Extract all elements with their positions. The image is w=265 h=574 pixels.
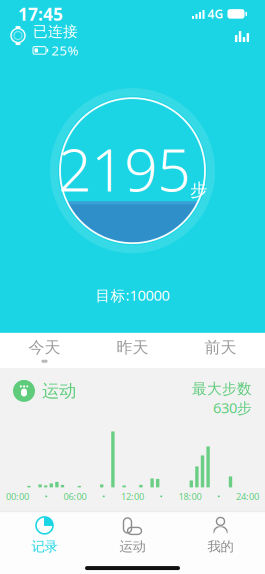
staticText: 步 — [190, 179, 207, 201]
staticText: 4G — [207, 6, 223, 22]
staticText: 今天 — [28, 338, 60, 357]
button[interactable]: 今天 — [0, 333, 88, 368]
staticText: 运动 — [42, 380, 76, 402]
staticText: 最大步数 — [192, 380, 252, 398]
staticText: 17:45 — [18, 2, 63, 25]
staticText: 25% — [51, 42, 78, 59]
button[interactable]: 昨天 — [88, 333, 176, 368]
staticText: 运动 — [119, 538, 145, 555]
button[interactable]: 前天 — [176, 333, 264, 368]
button[interactable]: 记录 — [0, 512, 88, 558]
staticText: 18:00 — [178, 490, 201, 503]
staticText: 昨天 — [116, 338, 148, 357]
button[interactable]: 统计 — [227, 22, 257, 48]
staticText: 已连接 — [33, 22, 78, 40]
staticText: 2195 — [58, 130, 190, 208]
button[interactable]: 我的 — [176, 512, 264, 558]
staticText: 前天 — [204, 338, 236, 357]
staticText: 记录 — [31, 538, 57, 555]
staticText: 目标:10000 — [95, 285, 169, 305]
staticText: 06:00 — [63, 490, 86, 503]
button[interactable]: 运动 — [13, 380, 76, 402]
staticText: 630步 — [213, 398, 252, 417]
staticText: 24:00 — [236, 490, 259, 503]
staticText: 00:00 — [6, 490, 29, 503]
staticText: 12:00 — [121, 490, 144, 503]
staticText: 我的 — [207, 538, 233, 555]
button[interactable]: 运动 — [88, 512, 176, 558]
